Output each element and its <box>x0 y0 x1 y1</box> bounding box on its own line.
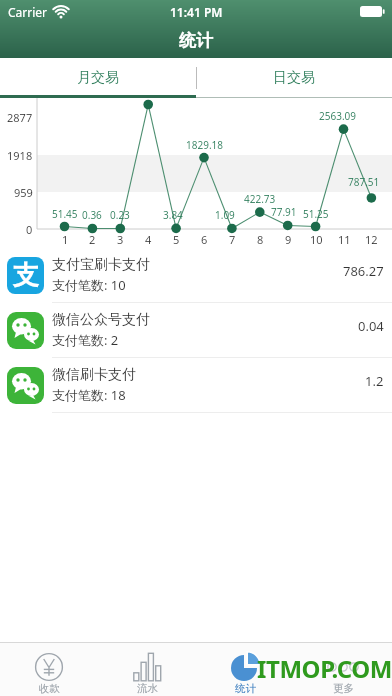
staticText: 1.2 <box>365 372 384 390</box>
staticText: 9 <box>285 232 292 246</box>
staticText: 1829.18 <box>186 138 223 152</box>
staticText: 77.91 <box>271 205 297 219</box>
staticText: 3.84 <box>163 208 183 222</box>
staticText: 11:41 PM <box>170 4 223 20</box>
staticText: 支付笔数: 18 <box>52 386 126 404</box>
staticText: 4 <box>145 232 152 246</box>
staticText: 6 <box>201 232 208 246</box>
staticText: 51.45 <box>52 207 78 221</box>
staticText: 2877 <box>7 110 33 125</box>
staticText: 5 <box>173 232 180 246</box>
button[interactable]: 收款 <box>0 643 98 696</box>
button[interactable]: 支 <box>0 248 392 302</box>
staticText: 流水 <box>137 682 158 695</box>
staticText: 0.23 <box>110 208 130 222</box>
staticText: 更多 <box>333 682 354 695</box>
button[interactable]: 月交易 <box>0 58 196 98</box>
staticText: 3 <box>117 232 124 246</box>
button[interactable]: 微信刷卡支付 <box>0 358 392 412</box>
staticText: 12 <box>365 232 378 246</box>
staticText: 0 <box>26 222 33 237</box>
staticText: 支 <box>13 259 39 292</box>
staticText: 786.27 <box>343 262 384 280</box>
staticText: 统计 <box>179 30 213 51</box>
staticText: 1.09 <box>215 208 235 222</box>
staticText: 10 <box>310 232 323 246</box>
staticText: 787.51 <box>348 175 380 189</box>
staticText: 8 <box>257 232 264 246</box>
staticText: 月交易 <box>77 69 119 87</box>
staticText: 0.36 <box>82 208 102 222</box>
staticText: 1 <box>62 232 69 246</box>
staticText: 422.73 <box>244 192 276 206</box>
staticText: 51.25 <box>303 207 329 221</box>
staticText: 支付笔数: 10 <box>52 276 126 294</box>
button[interactable]: 流水 <box>98 643 196 696</box>
button[interactable]: 统计 <box>196 643 294 696</box>
staticText: 统计 <box>235 682 256 695</box>
staticText: 支付笔数: 2 <box>52 331 119 349</box>
staticText: 0.04 <box>358 317 384 335</box>
staticText: 2 <box>89 232 96 246</box>
staticText: 959 <box>14 185 33 200</box>
staticText: Carrier <box>8 4 48 20</box>
staticText: 支付宝刷卡支付 <box>52 256 150 274</box>
staticText: 11 <box>338 232 351 246</box>
button[interactable]: 日交易 <box>196 58 392 98</box>
staticText: 1918 <box>7 148 33 163</box>
staticText: 2563.09 <box>319 109 356 123</box>
staticText: 微信刷卡支付 <box>52 366 136 384</box>
staticText: 日交易 <box>273 69 315 87</box>
staticText: 7 <box>229 232 236 246</box>
staticText: 微信公众号支付 <box>52 311 150 329</box>
staticText: ITMOP.COM <box>257 652 392 685</box>
staticText: 收款 <box>39 682 60 695</box>
button[interactable]: 更多 <box>294 643 392 696</box>
button[interactable]: 微信公众号支付 <box>0 303 392 357</box>
